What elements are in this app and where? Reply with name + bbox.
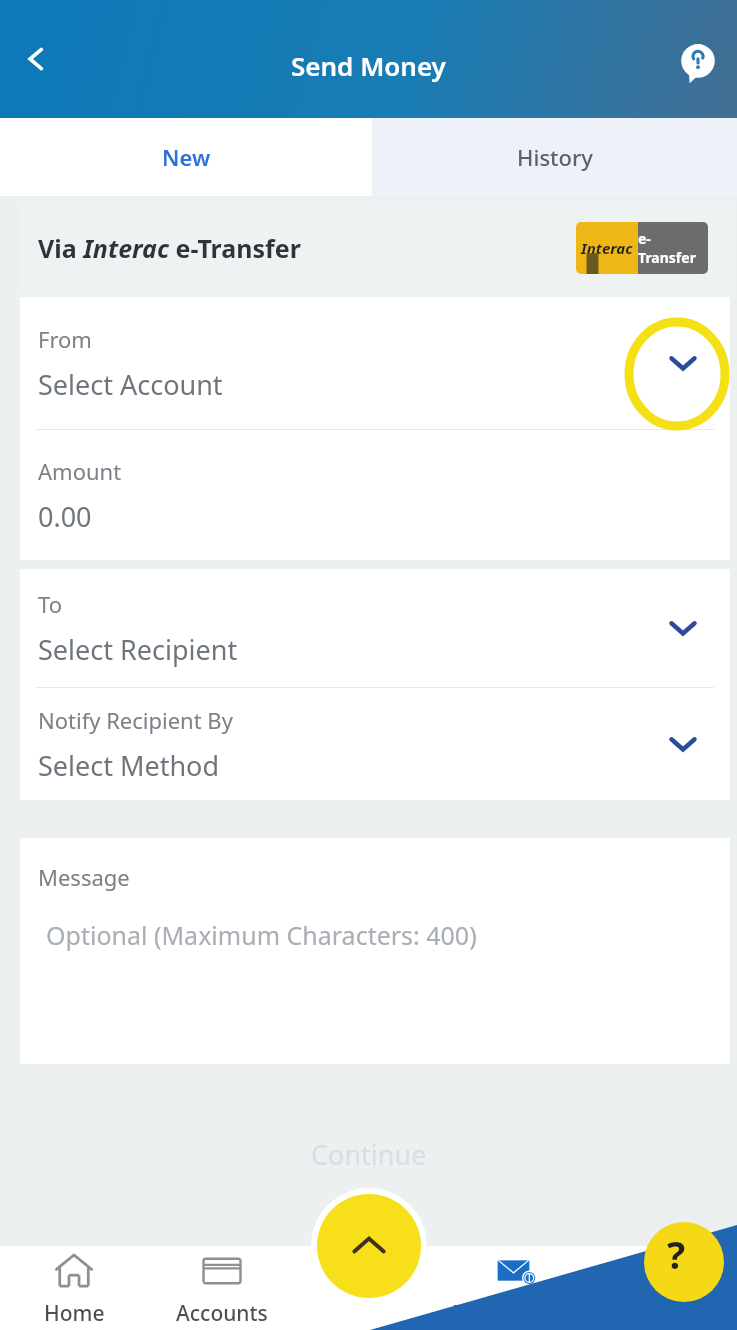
staticText: Message xyxy=(38,862,130,892)
staticText: Optional (Maximum Characters: 400) xyxy=(46,918,477,952)
button[interactable]: Back xyxy=(8,31,64,87)
staticText: More xyxy=(637,1299,690,1328)
button[interactable]: Help xyxy=(669,34,727,92)
button[interactable]: Move Money xyxy=(443,1246,590,1330)
staticText: ? xyxy=(667,1228,686,1280)
staticText: Accounts xyxy=(176,1299,268,1328)
staticText: Send Money xyxy=(291,48,446,83)
staticText: Select Recipient xyxy=(38,631,238,668)
staticText: Select Method xyxy=(38,747,220,784)
button[interactable]: From xyxy=(20,297,730,429)
staticText: Amount xyxy=(38,456,122,486)
staticText: To xyxy=(38,589,63,619)
staticText: New xyxy=(162,142,211,172)
staticText: Via Interac e-Transfer xyxy=(38,231,301,265)
staticText: Continue xyxy=(311,1136,427,1173)
button[interactable]: Help xyxy=(644,1222,724,1302)
staticText: Home xyxy=(44,1299,105,1328)
button[interactable]: To xyxy=(20,569,730,687)
button[interactable]: More xyxy=(590,1246,737,1330)
button[interactable]: Notify Recipient By xyxy=(20,688,730,800)
staticText: Notify Recipient By xyxy=(38,705,233,735)
staticText: History xyxy=(517,142,593,172)
button[interactable]: New xyxy=(0,118,372,196)
staticText: Select Account xyxy=(38,366,223,403)
button[interactable]: Accounts xyxy=(148,1246,296,1330)
staticText: Interac xyxy=(581,238,633,258)
button[interactable]: Amount xyxy=(20,430,730,560)
staticText: 0.00 xyxy=(38,498,92,535)
button[interactable]: Expand actions xyxy=(317,1194,421,1298)
button[interactable]: History xyxy=(372,118,737,196)
staticText: e-Transfer xyxy=(638,229,708,267)
button[interactable]: Message xyxy=(20,838,730,1064)
button[interactable]: Interac xyxy=(576,222,708,274)
button[interactable]: Home xyxy=(0,1246,148,1330)
staticText: Move Money xyxy=(452,1299,581,1328)
button[interactable]: Via Interac e-Transfer xyxy=(20,205,730,291)
staticText: From xyxy=(38,324,92,354)
